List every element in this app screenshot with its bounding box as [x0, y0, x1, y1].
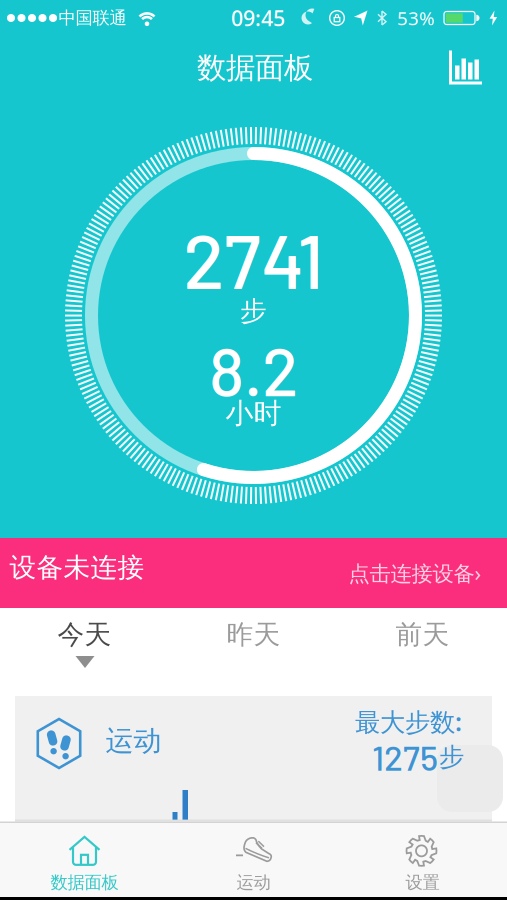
button[interactable]: 数据面板 [0, 828, 169, 900]
button[interactable]: 设备未连接 [0, 538, 507, 608]
staticText: 运动 [105, 724, 161, 758]
staticText: 最大步数: [355, 705, 462, 738]
staticText: 运动 [236, 872, 270, 893]
button[interactable]: 统计图表 [449, 50, 483, 84]
staticText: 8.2 [209, 329, 298, 409]
button[interactable]: 今天 [0, 606, 169, 662]
staticText: 昨天 [226, 618, 280, 651]
button[interactable]: 昨天 [169, 606, 338, 662]
staticText: 步 [240, 295, 267, 327]
staticText: 53% [397, 6, 435, 30]
staticText: 今天 [57, 618, 111, 651]
staticText: 数据面板 [50, 872, 118, 893]
staticText: 步 [439, 741, 464, 772]
staticText: 09:45 [231, 4, 285, 32]
staticText: 设置 [405, 872, 439, 893]
staticText: 设备未连接 [9, 551, 144, 584]
staticText: 中国联通 [58, 7, 126, 29]
button[interactable]: 设置 [338, 828, 507, 900]
button[interactable]: 前天 [338, 606, 507, 662]
button[interactable]: AssistiveTouch [437, 745, 503, 812]
staticText: 2741 [183, 213, 324, 304]
staticText: 小时 [225, 396, 281, 431]
staticText: 1275 [372, 736, 438, 778]
button[interactable]: 运动 [169, 828, 338, 900]
staticText: 数据面板 [197, 50, 313, 86]
button[interactable]: 运动 最大步数 1275步 [0, 0, 507, 900]
staticText: 前天 [395, 618, 449, 651]
staticText: 点击连接设备› [348, 559, 481, 587]
